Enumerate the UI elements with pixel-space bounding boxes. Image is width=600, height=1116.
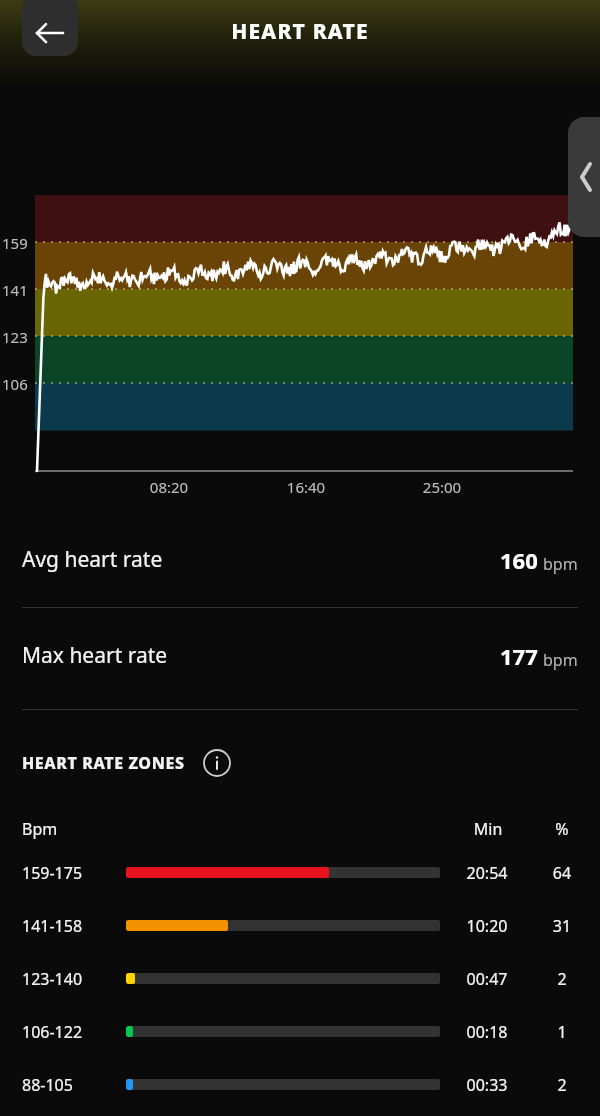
staticText: HEART RATE xyxy=(0,17,600,46)
staticText: 106-122 xyxy=(22,1021,83,1043)
button[interactable]: 159-175 xyxy=(0,846,600,899)
staticText: 00:18 xyxy=(452,1021,522,1043)
staticText: Bpm xyxy=(22,818,58,840)
button[interactable]: Back xyxy=(22,0,78,56)
button[interactable]: 106-122 xyxy=(0,1005,600,1058)
button[interactable]: Max heart rate xyxy=(0,608,600,703)
staticText: 31 xyxy=(542,915,582,937)
staticText: 123-140 xyxy=(22,968,83,990)
staticText: bpm xyxy=(543,553,578,575)
staticText: Min xyxy=(458,818,518,840)
button[interactable]: 88-105 xyxy=(0,1058,600,1111)
staticText: bpm xyxy=(543,649,578,671)
button[interactable]: 123-140 xyxy=(0,952,600,1005)
staticText: 20:54 xyxy=(452,862,522,884)
staticText: Max heart rate xyxy=(22,641,168,670)
staticText: 2 xyxy=(542,968,582,990)
staticText: 00:33 xyxy=(452,1074,522,1096)
staticText: HEART RATE ZONES xyxy=(22,752,185,774)
staticText: 159-175 xyxy=(22,862,83,884)
staticText: 16:40 xyxy=(277,477,335,497)
button[interactable]: Avg heart rate xyxy=(0,512,600,607)
button[interactable]: Info about heart rate zones xyxy=(202,748,232,778)
staticText: 64 xyxy=(542,862,582,884)
staticText: 141-158 xyxy=(22,915,83,937)
staticText: 08:20 xyxy=(140,477,198,497)
staticText: 160 xyxy=(500,545,538,575)
staticText: 00:47 xyxy=(452,968,522,990)
staticText: 106 xyxy=(2,374,28,394)
staticText: Avg heart rate xyxy=(22,545,163,574)
staticText: 2 xyxy=(542,1074,582,1096)
button[interactable]: Open panel xyxy=(568,117,600,237)
staticText: 159 xyxy=(2,233,28,253)
staticText: 1 xyxy=(542,1021,582,1043)
staticText: % xyxy=(542,818,582,840)
staticText: 25:00 xyxy=(413,477,471,497)
staticText: 141 xyxy=(2,280,28,300)
staticText: 88-105 xyxy=(22,1074,73,1096)
staticText: 123 xyxy=(2,327,28,347)
button[interactable]: 141-158 xyxy=(0,899,600,952)
staticText: 10:20 xyxy=(452,915,522,937)
staticText: 177 xyxy=(500,641,538,671)
